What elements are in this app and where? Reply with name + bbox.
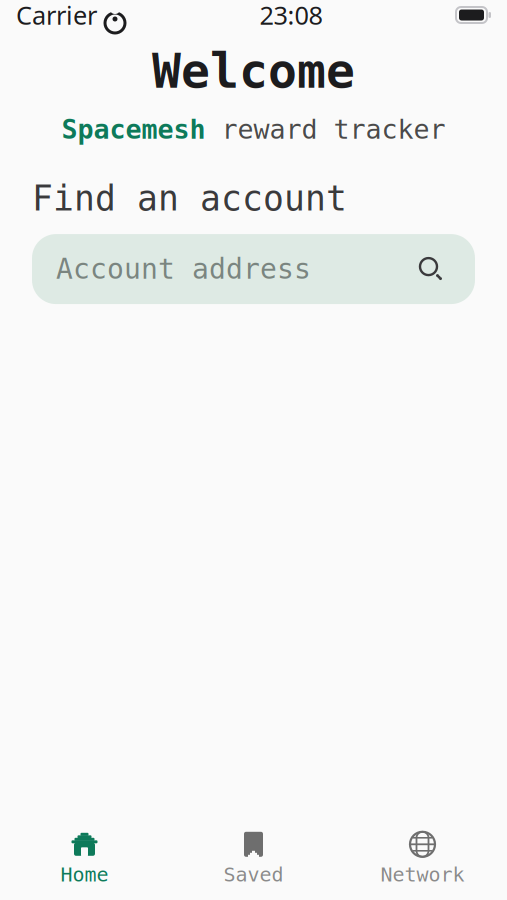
- staticText: reward tracker: [205, 114, 445, 145]
- button[interactable]: Saved: [169, 824, 338, 892]
- staticText: Find an account: [32, 179, 347, 218]
- staticText: Carrier: [16, 0, 97, 32]
- button[interactable]: Network: [338, 824, 507, 892]
- button[interactable]: Account address: [32, 234, 475, 304]
- staticText: 23:08: [259, 0, 322, 32]
- button[interactable]: Home: [0, 824, 169, 892]
- staticText: Spacemesh: [61, 114, 205, 145]
- staticText: Saved: [223, 863, 283, 886]
- staticText: Network: [380, 863, 464, 886]
- staticText: Account address: [56, 253, 311, 285]
- staticText: Home: [60, 863, 108, 886]
- staticText: Welcome: [152, 44, 355, 98]
